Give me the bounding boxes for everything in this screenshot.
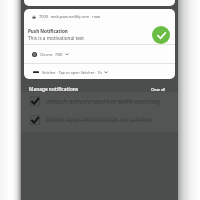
staticText: Push Notification [28,28,68,34]
button[interactable]: Completed [30,114,173,125]
button[interactable]: Stitcher · Tap to open Stitcher · 1h [24,64,175,79]
staticText: 7000 · web-pwa.netlify.com · now [39,14,101,19]
staticText: This is a motivational text [28,35,84,41]
staticText: Clear all [151,87,166,92]
staticText: Manage notifications [29,86,79,92]
staticText: attach service worker with caching [46,96,161,106]
other: Completed [30,96,40,106]
button[interactable]: 7000 · web-pwa.netlify.com · now [24,9,175,79]
staticText: Make app installable on phone [46,114,153,125]
staticText: Stitcher · Tap to open Stitcher · 1h [42,70,102,75]
button[interactable]: Chrome · 7000 [24,45,175,63]
staticText: Chrome · 7000 [40,52,63,56]
button[interactable]: Clear all [151,87,166,92]
button[interactable]: Completed [30,95,173,106]
other: Completed [30,115,40,125]
